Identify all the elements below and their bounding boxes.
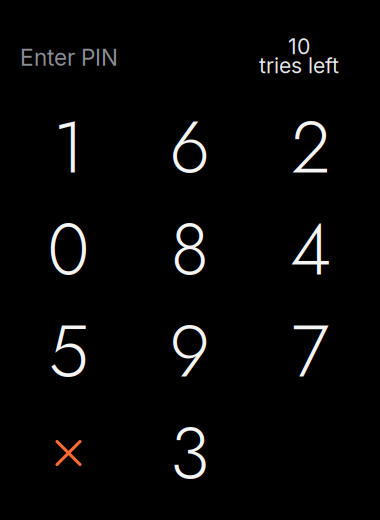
staticText: 10 xyxy=(288,34,310,59)
staticText: 1 xyxy=(53,95,84,199)
staticText: 2 xyxy=(291,95,330,199)
button[interactable]: 3 xyxy=(129,402,250,504)
button[interactable]: 9 xyxy=(129,300,250,402)
button[interactable]: 4 xyxy=(250,198,371,300)
button[interactable]: 2 xyxy=(250,96,371,198)
staticText: Enter PIN xyxy=(20,44,118,71)
staticText: tries left xyxy=(259,53,339,78)
button[interactable]: Delete xyxy=(8,402,129,504)
staticText: 4 xyxy=(290,197,331,301)
button[interactable]: 7 xyxy=(250,300,371,402)
button[interactable]: 0 xyxy=(8,198,129,300)
staticText: 8 xyxy=(170,197,208,301)
button[interactable]: 8 xyxy=(129,198,250,300)
button[interactable]: 6 xyxy=(129,96,250,198)
staticText: 6 xyxy=(169,95,209,199)
staticText: 7 xyxy=(291,299,329,403)
button[interactable]: 5 xyxy=(8,300,129,402)
staticText: 9 xyxy=(169,299,209,403)
staticText: 0 xyxy=(47,197,89,301)
staticText: 3 xyxy=(170,401,209,505)
staticText: 5 xyxy=(48,299,88,403)
button[interactable]: 1 xyxy=(8,96,129,198)
